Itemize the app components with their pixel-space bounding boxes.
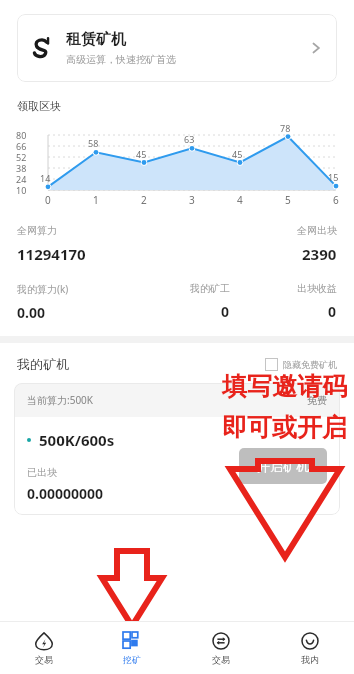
staticText: 6 <box>333 193 339 207</box>
staticText: 66 <box>16 140 27 152</box>
button[interactable]: 挖矿 <box>88 622 176 674</box>
button[interactable]: 我的 <box>265 622 354 674</box>
staticText: 我内 <box>301 654 319 665</box>
staticText: 我的矿工 <box>190 282 230 295</box>
staticText: 0 <box>328 302 337 321</box>
staticText: 80 <box>16 129 27 141</box>
staticText: 全网出块 <box>297 224 337 237</box>
staticText: 我的算力(k) <box>17 282 69 296</box>
staticText: 0.00000000 <box>27 484 104 503</box>
staticText: 免费 <box>307 394 327 407</box>
staticText: 0 <box>221 302 230 321</box>
staticText: 高级运算，快速挖矿首选 <box>66 53 176 66</box>
staticText: 0.00 <box>17 303 45 322</box>
staticText: 45 <box>136 148 147 160</box>
staticText: 交易 <box>35 654 53 665</box>
other: 交易 <box>212 632 230 650</box>
staticText: 14 <box>40 172 51 184</box>
button[interactable]: 开启矿机 <box>239 448 327 484</box>
staticText: 填写邀请码 <box>222 371 347 402</box>
staticText: 10 <box>16 184 27 196</box>
staticText: 3 <box>189 193 195 207</box>
other: 我的 <box>301 632 319 650</box>
button[interactable]: 交易 <box>176 622 265 674</box>
staticText: 15 <box>328 171 339 183</box>
staticText: 交易 <box>212 654 230 665</box>
staticText: 领取区块 <box>17 99 61 113</box>
button[interactable]: 隐藏免费矿机 <box>265 358 337 371</box>
staticText: 当前算力:500K <box>27 393 94 407</box>
staticText: 500K/600s <box>39 430 115 450</box>
staticText: 挖矿 <box>123 654 141 665</box>
staticText: 52 <box>16 151 27 163</box>
staticText: 全网算力 <box>17 224 57 237</box>
staticText: 2390 <box>302 244 337 264</box>
staticText: 1 <box>93 193 99 207</box>
button[interactable]: 交易 <box>0 622 88 674</box>
staticText: 即可或开启 <box>222 412 347 443</box>
staticText: 2 <box>141 193 147 207</box>
staticText: 45 <box>232 148 243 160</box>
staticText: 5 <box>285 193 291 207</box>
other: 挖矿 <box>123 632 141 650</box>
staticText: 4 <box>237 193 243 207</box>
staticText: 开启矿机 <box>257 458 309 474</box>
other: 交易 <box>35 632 53 650</box>
staticText: 已出块 <box>27 466 57 479</box>
other: Open <box>308 40 324 56</box>
button[interactable]: 租赁矿机 <box>17 14 337 82</box>
staticText: 78 <box>280 122 291 134</box>
staticText: 我的矿机 <box>17 356 69 372</box>
staticText: 58 <box>88 137 99 149</box>
staticText: 租赁矿机 <box>66 30 126 49</box>
staticText: 隐藏免费矿机 <box>283 359 337 370</box>
staticText: 38 <box>16 162 27 174</box>
staticText: 出块收益 <box>297 282 337 295</box>
staticText: 0 <box>45 193 51 207</box>
staticText: 63 <box>184 133 195 145</box>
button[interactable]: 当前算力:500K <box>14 383 340 515</box>
staticText: 24 <box>16 173 27 185</box>
staticText: 11294170 <box>17 244 86 264</box>
